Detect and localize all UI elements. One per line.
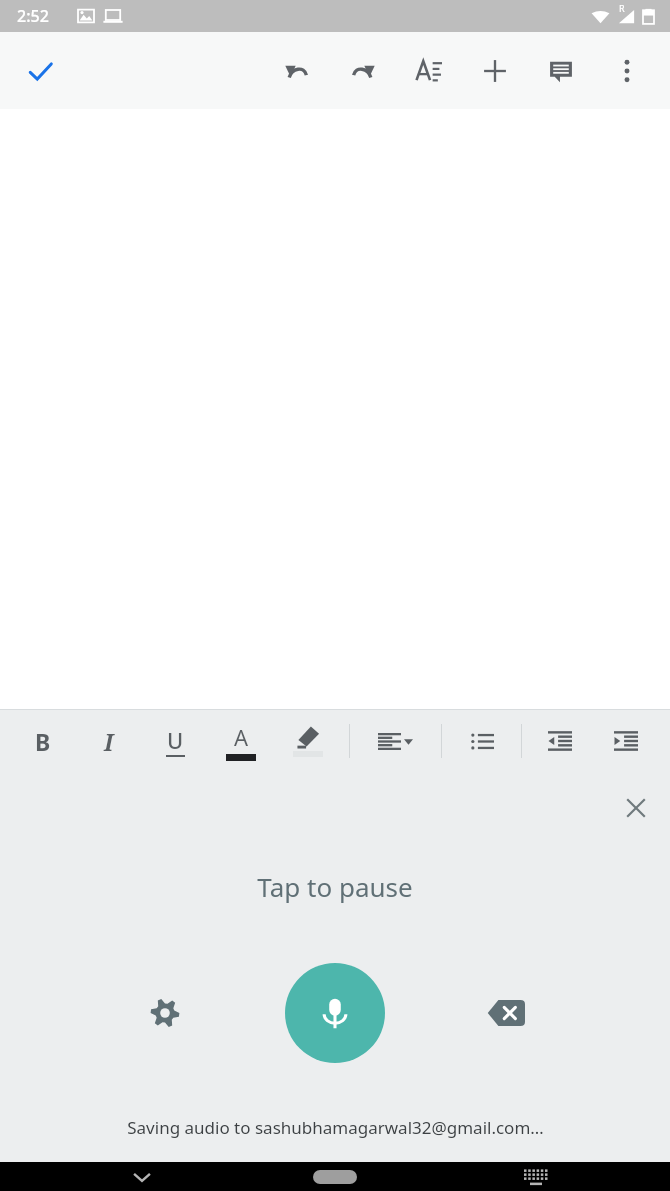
button[interactable]: Redo bbox=[330, 43, 396, 99]
button[interactable]: Highlight color bbox=[280, 710, 336, 772]
button[interactable]: Insert bbox=[462, 43, 528, 99]
staticText: Saving audio to sashubhamagarwal32@gmail… bbox=[127, 1116, 544, 1139]
staticText: 2:52 bbox=[17, 5, 49, 27]
staticText: B bbox=[35, 726, 51, 757]
button[interactable]: Back bbox=[118, 1162, 166, 1191]
button[interactable]: Italic bbox=[81, 710, 137, 772]
button[interactable]: Pause voice typing bbox=[285, 963, 385, 1063]
button[interactable]: Increase indent bbox=[598, 710, 654, 772]
button[interactable]: Bold bbox=[15, 710, 71, 772]
staticText: A bbox=[234, 722, 249, 752]
button[interactable]: More options bbox=[594, 43, 660, 99]
button[interactable]: Hide keyboard bbox=[512, 1162, 560, 1191]
staticText: Tap to pause bbox=[257, 869, 413, 904]
button[interactable]: Text formatting bbox=[396, 43, 462, 99]
button[interactable]: Bulleted list bbox=[454, 710, 510, 772]
button[interactable]: Undo bbox=[264, 43, 330, 99]
button[interactable]: Comments bbox=[528, 43, 594, 99]
button[interactable]: Delete bbox=[478, 985, 534, 1041]
button[interactable]: Underline bbox=[147, 710, 203, 772]
button[interactable]: Decrease indent bbox=[532, 710, 588, 772]
staticText: U bbox=[167, 725, 184, 755]
button[interactable]: Done bbox=[16, 47, 64, 95]
button[interactable]: Voice typing settings bbox=[137, 985, 193, 1041]
button[interactable]: Home bbox=[299, 1166, 371, 1188]
button[interactable]: Text color bbox=[213, 710, 269, 772]
staticText: I bbox=[104, 726, 114, 757]
button[interactable]: Close bbox=[612, 784, 660, 832]
staticText: R bbox=[619, 2, 625, 14]
button[interactable]: Alignment bbox=[367, 710, 423, 772]
